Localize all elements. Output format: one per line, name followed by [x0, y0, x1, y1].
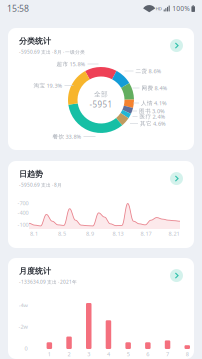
staticText: 人情 4.1% — [141, 99, 167, 107]
staticText: 餐饮 33.8% — [52, 133, 81, 140]
staticText: 8.21 — [168, 230, 179, 237]
staticText: 100% — [172, 4, 190, 13]
staticText: 超市 15.8% — [56, 60, 85, 68]
staticText: -4w — [18, 301, 27, 309]
staticText: 1 — [48, 350, 51, 358]
staticText: 分类统计 — [19, 36, 51, 46]
staticText: 月度统计 — [19, 266, 51, 276]
staticText: -5950.69 支出 · 8月 — [19, 182, 62, 188]
staticText: 二货 8.6% — [135, 67, 161, 75]
staticText: 8.5 — [58, 230, 66, 237]
staticText: 8.1 — [30, 230, 38, 237]
staticText: -400 — [17, 209, 28, 216]
button[interactable]: Open 月度统计 — [170, 269, 183, 282]
button[interactable]: Open 分类统计 — [170, 39, 183, 52]
staticText: 图书 3.0% — [139, 107, 165, 115]
staticText: 8.9 — [86, 230, 94, 237]
staticText: 6 — [146, 350, 149, 358]
staticText: 淘宝 19.3% — [33, 82, 62, 89]
staticText: 15:58 — [7, 3, 29, 14]
staticText: -5950.69 支出 · 8月 · 一级分类 — [19, 49, 85, 55]
staticText: -133634.09 支出 · 2021年 — [19, 279, 77, 285]
staticText: 8.13 — [112, 230, 123, 237]
staticText: 5 — [127, 350, 130, 358]
staticText: 医疗 2.4% — [139, 113, 165, 120]
staticText: -2w — [18, 323, 27, 330]
staticText: 日趋势 — [19, 169, 43, 179]
staticText: -5951 — [89, 99, 112, 110]
staticText: 3 — [87, 350, 90, 358]
staticText: 全部 — [94, 90, 108, 98]
staticText: 2 — [67, 350, 70, 358]
staticText: 7 — [166, 350, 169, 358]
staticText: -700 — [17, 199, 28, 207]
button[interactable]: Open 日趋势 — [170, 172, 183, 185]
staticText: 8 — [186, 350, 189, 358]
staticText: 网费 8.4% — [141, 84, 167, 92]
staticText: HD — [156, 6, 162, 11]
staticText: 4 — [107, 350, 110, 358]
staticText: -100 — [17, 221, 28, 228]
staticText: 8.17 — [140, 230, 151, 237]
staticText: 0 — [24, 344, 27, 352]
staticText: 其它 4.6% — [140, 120, 166, 127]
